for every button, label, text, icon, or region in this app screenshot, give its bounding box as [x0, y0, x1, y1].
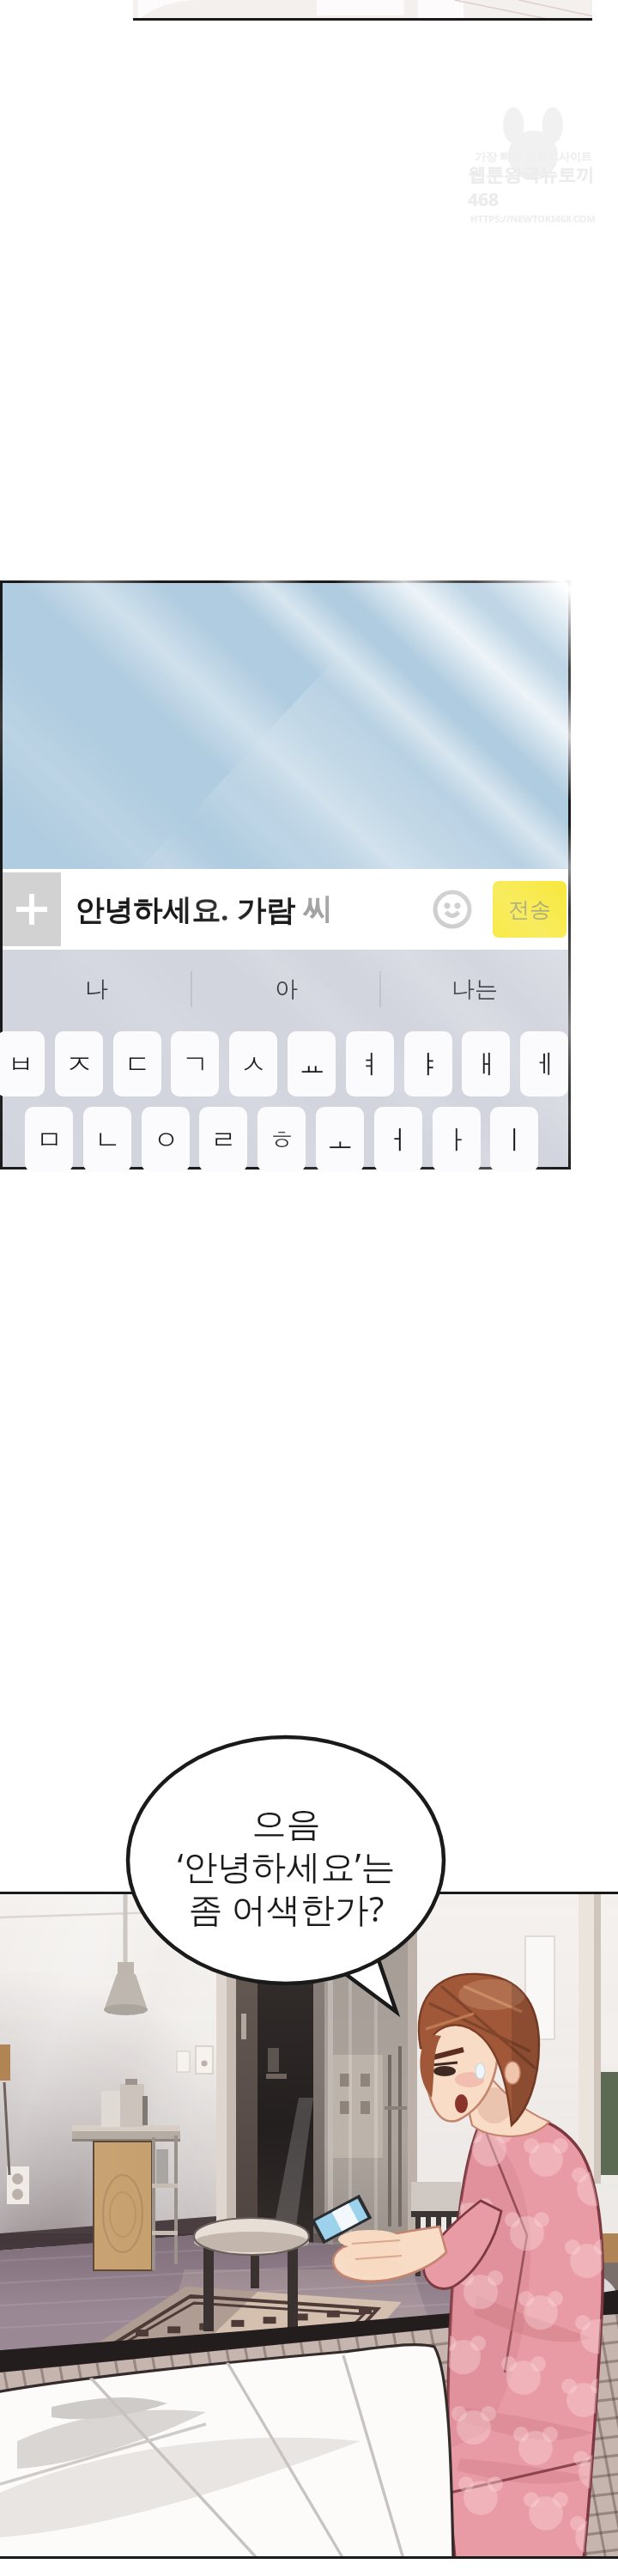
button[interactable]: ㅐ: [462, 1031, 510, 1097]
staticText: 으음 ‘안녕하세요’는 좀 어색한가?: [177, 1802, 396, 1932]
button[interactable]: ㅎ: [257, 1107, 306, 1172]
staticText: 전송: [508, 896, 551, 923]
staticText: ㅅ: [240, 1048, 267, 1081]
staticText: ㅓ: [385, 1123, 412, 1157]
button[interactable]: Emoji: [433, 890, 472, 929]
staticText: ㅗ: [327, 1123, 354, 1157]
staticText: ㄷ: [124, 1048, 151, 1081]
staticText: 가장 빠른 업로드사이트: [475, 149, 592, 164]
button[interactable]: ㅈ: [55, 1031, 103, 1097]
button[interactable]: ㅁ: [25, 1107, 73, 1172]
button[interactable]: 나: [3, 950, 191, 1029]
staticText: ㅛ: [299, 1048, 325, 1081]
staticText: ㅈ: [66, 1048, 93, 1081]
staticText: 안녕하세요. 가람: [75, 890, 303, 929]
button[interactable]: ㅏ: [433, 1107, 481, 1172]
staticText: ㄴ: [94, 1123, 121, 1157]
button[interactable]: ㅗ: [316, 1107, 364, 1172]
staticText: ㄱ: [182, 1048, 209, 1081]
staticText: 나는: [451, 975, 498, 1004]
staticText: 아: [275, 975, 298, 1004]
staticText: ㅔ: [531, 1048, 558, 1081]
staticText: ㅏ: [444, 1123, 470, 1157]
staticText: ㄹ: [210, 1123, 237, 1157]
staticText: ㅎ: [269, 1123, 295, 1157]
staticText: ㅐ: [473, 1048, 500, 1081]
button[interactable]: 전송: [493, 881, 566, 938]
button[interactable]: ㄴ: [83, 1107, 131, 1172]
button[interactable]: ㄱ: [171, 1031, 219, 1097]
button[interactable]: ㄹ: [199, 1107, 247, 1172]
button[interactable]: ㅣ: [490, 1107, 538, 1172]
staticText: 씨: [303, 891, 332, 928]
button[interactable]: ㅛ: [288, 1031, 336, 1097]
button[interactable]: Add attachment: [3, 872, 61, 946]
staticText: HTTPS://NEWTOKI468.COM: [470, 212, 596, 225]
button[interactable]: ㄷ: [113, 1031, 161, 1097]
staticText: ㅑ: [415, 1048, 442, 1081]
staticText: ㅁ: [36, 1123, 63, 1157]
button[interactable]: ㅇ: [142, 1107, 190, 1172]
button[interactable]: ㅑ: [404, 1031, 452, 1097]
button[interactable]: ㅅ: [229, 1031, 277, 1097]
button[interactable]: ㅂ: [0, 1031, 45, 1097]
button[interactable]: 아: [192, 950, 379, 1029]
staticText: 웹툰왕국뉴토끼468: [468, 164, 598, 212]
button[interactable]: ㅕ: [346, 1031, 394, 1097]
button[interactable]: ㅔ: [520, 1031, 568, 1097]
staticText: ㅣ: [501, 1123, 528, 1157]
button[interactable]: 나는: [381, 950, 568, 1029]
staticText: ㅕ: [357, 1048, 384, 1081]
staticText: 나: [85, 975, 108, 1004]
staticText: ㅂ: [8, 1048, 34, 1081]
button[interactable]: ㅓ: [374, 1107, 422, 1172]
staticText: ㅇ: [153, 1123, 179, 1157]
